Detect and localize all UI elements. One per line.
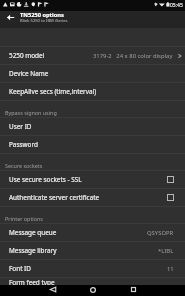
button[interactable]: 5250 model bbox=[0, 47, 185, 64]
staticText: QSYSOPR bbox=[147, 229, 174, 237]
staticText: 3179-2 24 x 80 color display bbox=[93, 52, 173, 60]
button[interactable]: Font ID bbox=[0, 260, 185, 277]
button[interactable]: Recent apps bbox=[113, 285, 153, 294]
staticText: Secure sockets bbox=[5, 162, 43, 169]
staticText: 11 bbox=[167, 265, 174, 273]
staticText: KeepAlive secs (time,interval) bbox=[9, 87, 97, 96]
button[interactable]: KeepAlive secs (time,interval) bbox=[0, 83, 185, 100]
staticText: *LIBL bbox=[158, 247, 174, 255]
staticText: Device Name bbox=[9, 69, 49, 78]
staticText: Message library bbox=[9, 246, 57, 255]
staticText: TN5250 options bbox=[20, 11, 64, 19]
button[interactable]: Message queue bbox=[0, 224, 185, 241]
staticText: Password bbox=[9, 140, 38, 149]
staticText: Bypass signon using bbox=[5, 109, 57, 116]
button[interactable]: Password bbox=[0, 136, 185, 153]
staticText: 5250 model bbox=[9, 51, 45, 60]
button[interactable]: Back bbox=[33, 285, 73, 294]
button[interactable]: Message library bbox=[0, 242, 185, 259]
button[interactable]: Form feed type bbox=[0, 278, 185, 285]
staticText: User ID bbox=[9, 122, 32, 131]
button[interactable]: Device Name bbox=[0, 65, 185, 82]
staticText: Font ID bbox=[9, 264, 31, 273]
button[interactable]: Navigate up bbox=[0, 11, 20, 28]
button[interactable]: User ID bbox=[0, 118, 185, 135]
staticText: Authenticate server certificate bbox=[9, 193, 100, 202]
staticText: 05:45 bbox=[170, 2, 183, 9]
staticText: Message queue bbox=[9, 228, 57, 237]
button[interactable]: Home bbox=[73, 285, 113, 294]
staticText: Printer options bbox=[5, 215, 43, 222]
button[interactable]: Authenticate server certificate bbox=[0, 189, 185, 206]
staticText: Use secure sockets - SSL bbox=[9, 175, 82, 184]
staticText: Form feed type bbox=[9, 278, 55, 285]
button[interactable]: Use secure sockets - SSL bbox=[0, 171, 185, 188]
staticText: Blink 5250 to IBM iSeries bbox=[20, 18, 68, 24]
